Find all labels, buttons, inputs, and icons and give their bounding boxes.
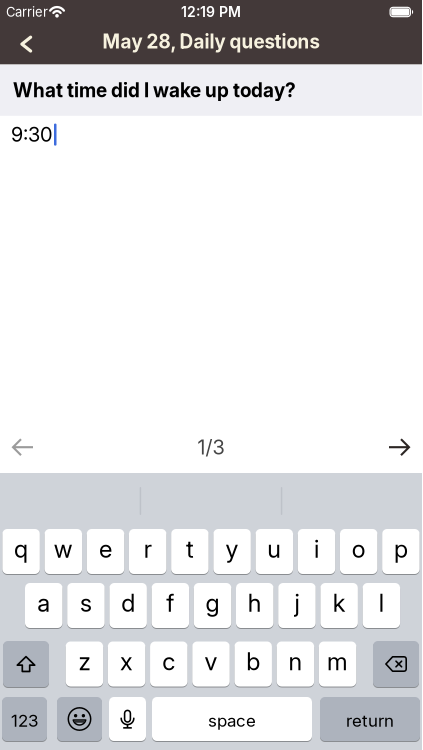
button[interactable]: c: [150, 641, 188, 686]
staticText: t: [186, 535, 194, 563]
button[interactable]: y: [213, 529, 251, 574]
staticText: j: [294, 589, 299, 617]
staticText: v: [204, 647, 217, 676]
staticText: What time did I wake up today?: [13, 79, 296, 101]
button[interactable]: e: [87, 529, 124, 574]
staticText: q: [14, 535, 28, 563]
button[interactable]: h: [236, 583, 273, 628]
button[interactable]: k: [320, 583, 358, 628]
staticText: May 28, Daily questions: [102, 30, 319, 53]
button[interactable]: f: [152, 583, 189, 628]
button[interactable]: d: [109, 583, 147, 628]
button[interactable]: Space: [152, 697, 312, 741]
staticText: Carrier: [6, 4, 48, 20]
staticText: k: [333, 589, 346, 617]
button[interactable]: b: [234, 641, 272, 686]
staticText: l: [379, 589, 384, 617]
button[interactable]: Previous question: [0, 438, 34, 457]
staticText: 1/3: [197, 435, 224, 459]
staticText: x: [120, 647, 133, 676]
staticText: 12:19 PM: [181, 4, 241, 20]
button[interactable]: Shift: [3, 641, 49, 687]
button[interactable]: l: [363, 583, 400, 628]
staticText: e: [99, 535, 112, 563]
staticText: r: [144, 535, 152, 563]
staticText: w: [54, 535, 73, 563]
staticText: p: [394, 535, 408, 563]
button[interactable]: o: [340, 529, 377, 574]
staticText: s: [80, 589, 92, 617]
button[interactable]: Back: [0, 27, 32, 60]
staticText: 9:30: [11, 123, 53, 146]
button[interactable]: w: [45, 529, 82, 574]
button[interactable]: a: [25, 583, 62, 628]
button[interactable]: x: [108, 641, 145, 686]
staticText: f: [166, 589, 174, 617]
button[interactable]: m: [319, 641, 356, 686]
staticText: return: [346, 710, 394, 731]
staticText: y: [226, 535, 239, 563]
staticText: m: [327, 647, 348, 676]
button[interactable]: n: [277, 641, 314, 686]
button[interactable]: r: [129, 529, 166, 574]
button[interactable]: q: [2, 529, 40, 574]
button[interactable]: Numbers: [2, 697, 47, 741]
staticText: a: [37, 589, 50, 617]
button[interactable]: u: [256, 529, 293, 574]
staticText: u: [267, 535, 281, 563]
staticText: b: [246, 647, 260, 676]
button[interactable]: t: [171, 529, 209, 574]
button[interactable]: v: [192, 641, 230, 686]
button[interactable]: s: [67, 583, 105, 628]
button[interactable]: Next question: [388, 438, 422, 457]
button[interactable]: i: [298, 529, 335, 574]
button[interactable]: z: [66, 641, 103, 686]
button[interactable]: Delete: [373, 641, 419, 687]
staticText: 123: [11, 710, 38, 731]
button[interactable]: j: [278, 583, 316, 628]
button[interactable]: p: [382, 529, 420, 574]
staticText: i: [314, 535, 319, 563]
staticText: g: [206, 589, 220, 617]
staticText: z: [78, 647, 90, 676]
button[interactable]: Emoji: [57, 697, 102, 741]
staticText: h: [248, 589, 262, 617]
staticText: space: [208, 710, 256, 731]
staticText: c: [162, 647, 175, 676]
staticText: o: [352, 535, 366, 563]
staticText: n: [288, 647, 302, 676]
staticText: d: [121, 589, 135, 617]
button[interactable]: Dictate: [109, 697, 146, 741]
button[interactable]: Return: [320, 697, 420, 741]
button[interactable]: g: [194, 583, 231, 628]
